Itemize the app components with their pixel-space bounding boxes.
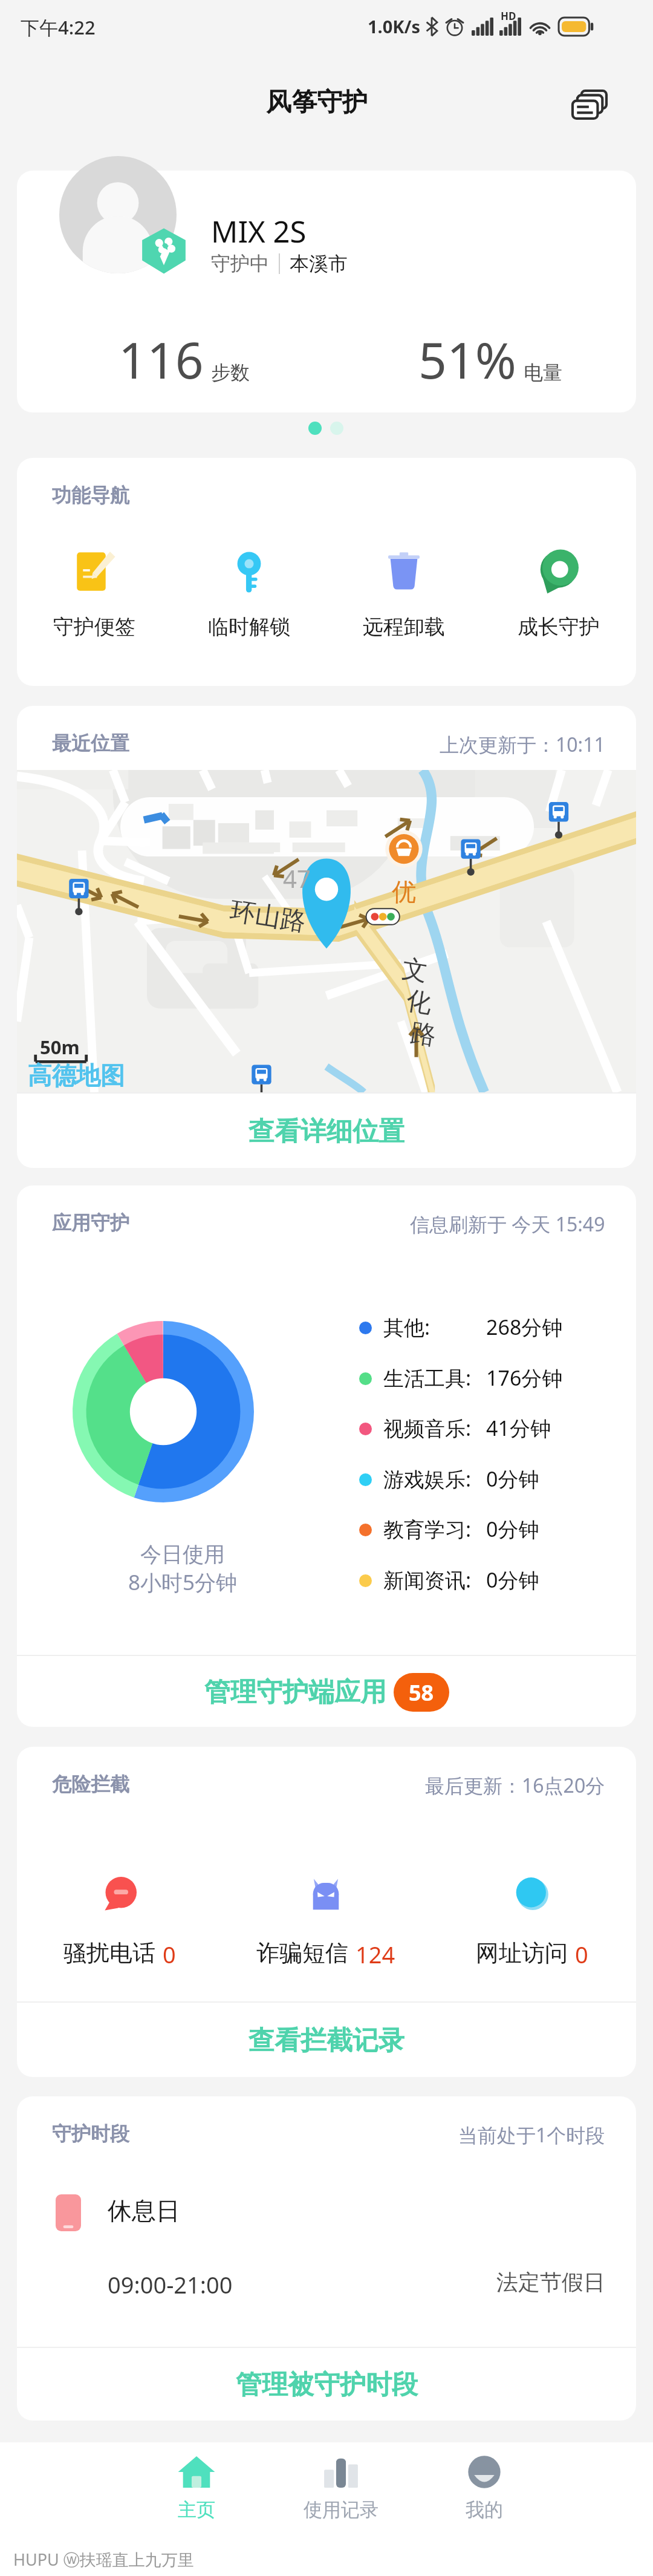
button[interactable]: Messages — [562, 77, 617, 132]
staticText: 0 — [163, 1939, 176, 1970]
staticText: 生活工具: — [383, 1364, 472, 1392]
staticText: 本溪市 — [290, 252, 348, 276]
button[interactable]: 查看拦截记录 — [17, 2003, 636, 2077]
staticText: HUPU ⓦ扶瑶直上九万里 — [13, 2548, 194, 2571]
staticText: 游戏娱乐: — [383, 1465, 472, 1493]
staticText: 守护时段 — [52, 2122, 129, 2146]
staticText: 51% — [418, 325, 516, 393]
staticText: 今日使用 — [140, 1541, 225, 1568]
staticText: 骚扰电话 — [63, 1939, 155, 1968]
staticText: 09:00-21:00 — [108, 2269, 233, 2300]
staticText: 守护中 — [211, 252, 269, 276]
staticText: 成长守护 — [518, 614, 600, 640]
staticText: 主页 — [178, 2498, 215, 2522]
button[interactable]: 管理被守护时段 — [17, 2348, 636, 2421]
staticText: 临时解锁 — [208, 614, 290, 640]
staticText: 50m — [40, 1034, 80, 1060]
staticText: 最后更新：16点20分 — [425, 1772, 605, 1799]
staticText: 步数 — [211, 360, 250, 385]
staticText: 危险拦截 — [52, 1772, 129, 1796]
staticText: 视频音乐: — [383, 1414, 472, 1442]
staticText: 信息刷新于 今天 15:49 — [410, 1211, 605, 1237]
staticText: 管理守护端应用 — [204, 1676, 386, 1709]
staticText: 1.0K/s — [368, 15, 421, 38]
staticText: 0 — [575, 1939, 588, 1970]
staticText: 124 — [356, 1939, 395, 1970]
staticText: 路 — [408, 1017, 438, 1052]
staticText: 风筝守护 — [266, 86, 368, 119]
button[interactable]: 诈骗短信 — [226, 1850, 426, 1946]
staticText: 应用守护 — [52, 1211, 129, 1235]
staticText: 远程卸载 — [363, 614, 445, 640]
staticText: 其他: — [383, 1313, 430, 1341]
staticText: 8小时5分钟 — [128, 1568, 238, 1597]
button[interactable]: 远程卸载 — [343, 536, 464, 657]
staticText: 管理被守护时段 — [236, 2369, 418, 2401]
button[interactable]: 守护便签 — [34, 536, 155, 657]
staticText: 查看拦截记录 — [249, 2024, 404, 2057]
button[interactable]: 临时解锁 — [189, 536, 310, 657]
staticText: 我的 — [466, 2498, 503, 2522]
staticText: 新闻资讯: — [383, 1566, 472, 1594]
staticText: 环山路 — [228, 895, 308, 938]
button[interactable]: 查看详细位置 — [17, 1094, 636, 1168]
staticText: 休息日 — [108, 2196, 180, 2226]
staticText: 诈骗短信 — [256, 1939, 348, 1968]
staticText: 网址访问 — [476, 1939, 568, 1968]
staticText: 0分钟 — [486, 1515, 539, 1543]
staticText: 查看详细位置 — [249, 1115, 404, 1148]
staticText: 41分钟 — [486, 1414, 551, 1442]
staticText: 268分钟 — [486, 1313, 563, 1341]
staticText: 使用记录 — [304, 2498, 378, 2522]
staticText: 下午4:22 — [21, 15, 96, 40]
button[interactable]: 主页 — [124, 2448, 269, 2539]
button[interactable]: 管理守护端应用 — [17, 1656, 636, 1727]
staticText: HD — [501, 9, 516, 23]
staticText: 0分钟 — [486, 1465, 539, 1493]
staticText: MIX 2S — [211, 211, 307, 252]
staticText: 功能导航 — [52, 483, 129, 507]
staticText: 116 — [119, 325, 204, 393]
staticText: 守护便签 — [53, 614, 135, 640]
staticText: 教育学习: — [383, 1515, 472, 1543]
staticText: 电量 — [524, 360, 562, 385]
staticText: 47 — [283, 862, 311, 895]
staticText: 文 — [400, 953, 430, 988]
staticText: 法定节假日 — [496, 2269, 605, 2296]
staticText: 化 — [404, 985, 434, 1020]
button[interactable]: 使用记录 — [268, 2448, 414, 2539]
staticText: 高德地图 — [28, 1060, 125, 1091]
staticText: 当前处于1个时段 — [458, 2122, 605, 2148]
button[interactable]: 成长守护 — [498, 536, 619, 657]
button[interactable]: 骚扰电话 — [20, 1850, 219, 1946]
staticText: 优 — [392, 876, 416, 907]
button[interactable]: 网址访问 — [432, 1850, 632, 1946]
staticText: 上次更新于：10:11 — [440, 731, 605, 758]
staticText: 58 — [409, 1678, 434, 1707]
button[interactable]: 我的 — [412, 2448, 557, 2539]
staticText: 176分钟 — [486, 1364, 563, 1392]
staticText: 最近位置 — [52, 731, 129, 755]
staticText: 0分钟 — [486, 1566, 539, 1594]
